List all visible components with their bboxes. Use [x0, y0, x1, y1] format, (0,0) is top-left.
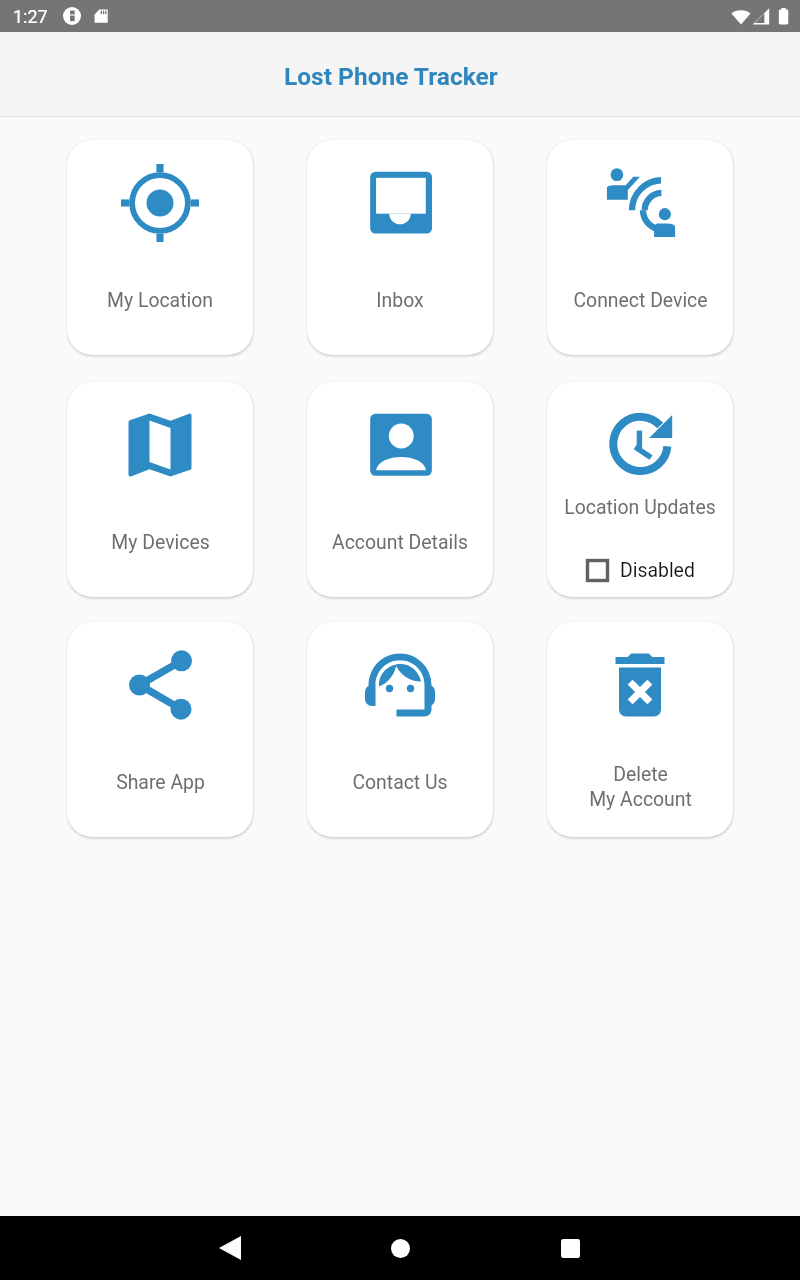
button[interactable]: My Location	[67, 140, 253, 355]
staticText: Lost Phone Tracker	[284, 62, 498, 91]
button[interactable]: Share App	[67, 622, 253, 837]
button[interactable]: Account Details	[307, 382, 493, 597]
button[interactable]: Connect Device	[547, 140, 733, 355]
button[interactable]: Location Updates	[547, 382, 733, 597]
button[interactable]: Disabled	[586, 559, 695, 582]
button[interactable]: Home	[315, 1216, 485, 1280]
staticText: My Location	[107, 289, 213, 312]
button[interactable]: Inbox	[307, 140, 493, 355]
staticText: Location Updates	[564, 496, 716, 519]
button[interactable]: My Devices	[67, 382, 253, 597]
staticText: 1:27	[13, 6, 48, 27]
staticText: My Devices	[111, 531, 210, 554]
staticText: Disabled	[620, 559, 695, 582]
button[interactable]: Delete My Account	[547, 622, 733, 837]
staticText: Connect Device	[573, 289, 708, 312]
staticText: Share App	[116, 771, 205, 794]
staticText: Inbox	[376, 289, 424, 312]
button[interactable]: Back	[145, 1216, 315, 1280]
staticText: Account Details	[332, 531, 468, 554]
staticText: Contact Us	[352, 771, 448, 794]
button[interactable]: Recents	[485, 1216, 655, 1280]
button[interactable]: Contact Us	[307, 622, 493, 837]
staticText: Delete My Account	[589, 763, 692, 811]
